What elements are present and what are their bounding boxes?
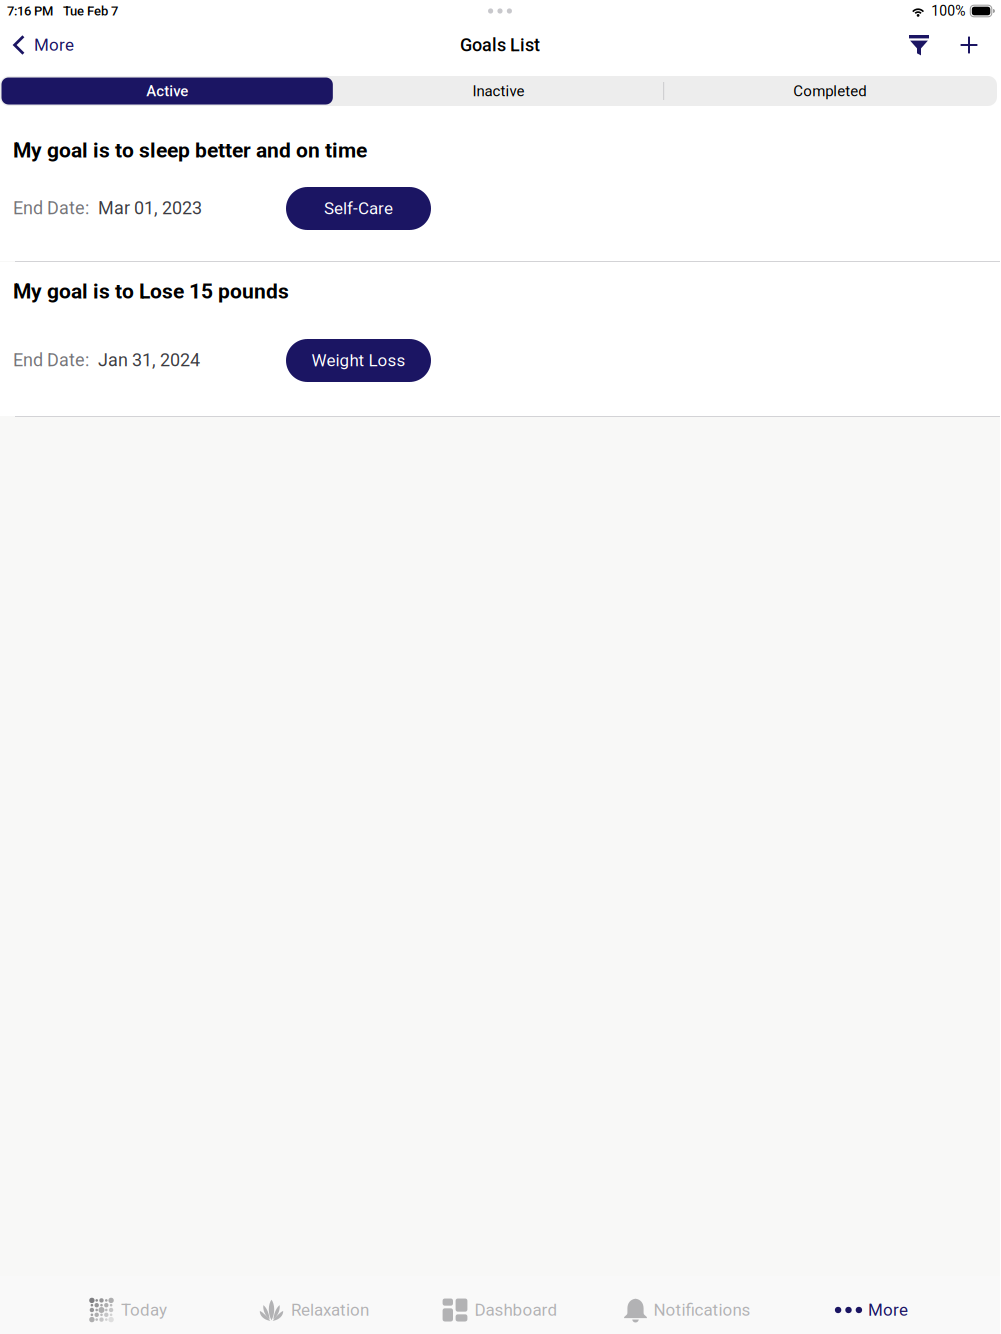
staticText: Dashboard (474, 1300, 557, 1320)
staticText: 7:16 PM (7, 3, 53, 19)
staticText: Weight Loss (311, 350, 405, 370)
staticText: My goal is to Lose 15 pounds (13, 279, 289, 304)
staticText: Goals List (460, 34, 540, 56)
staticText: Jan 31, 2024 (98, 349, 200, 371)
staticText: Tue Feb 7 (63, 3, 118, 19)
staticText: Inactive (472, 82, 524, 100)
button[interactable]: My goal is to Lose 15 pounds (0, 262, 1000, 416)
button[interactable]: Completed (664, 77, 995, 104)
staticText: Mar 01, 2023 (98, 197, 202, 219)
button[interactable]: Dashboard (407, 1276, 593, 1334)
button[interactable]: Relaxation (221, 1276, 407, 1334)
staticText: More (34, 35, 74, 55)
button[interactable]: My goal is to sleep better and on time (0, 119, 1000, 261)
button[interactable]: Active (1, 77, 333, 104)
staticText: Relaxation (291, 1300, 369, 1320)
staticText: More (868, 1300, 908, 1320)
button[interactable]: Today (35, 1276, 221, 1334)
staticText: Active (146, 82, 188, 100)
button[interactable]: Filter goals (896, 22, 942, 68)
button[interactable]: Add goal (946, 22, 992, 68)
button[interactable]: More (0, 22, 86, 68)
button[interactable]: Inactive (333, 77, 664, 104)
staticText: End Date: (13, 197, 89, 219)
staticText: 100% (931, 3, 965, 19)
staticText: Today (121, 1300, 167, 1320)
button[interactable]: More (779, 1276, 965, 1334)
staticText: Notifications (653, 1300, 750, 1320)
button[interactable]: Notifications (593, 1276, 779, 1334)
staticText: Self-Care (324, 198, 393, 218)
staticText: My goal is to sleep better and on time (13, 138, 367, 163)
staticText: Completed (793, 82, 866, 100)
staticText: End Date: (13, 349, 89, 371)
